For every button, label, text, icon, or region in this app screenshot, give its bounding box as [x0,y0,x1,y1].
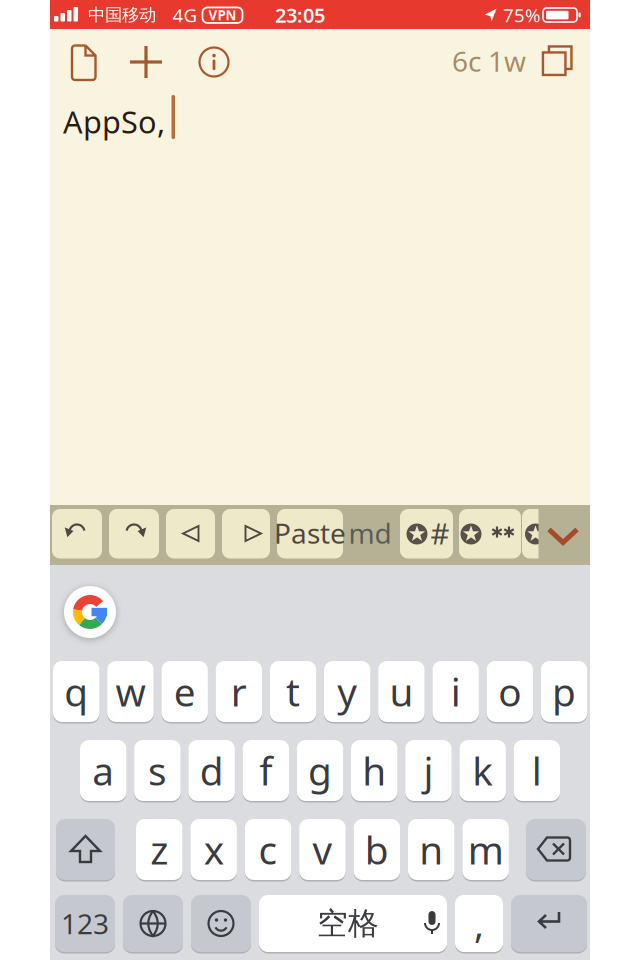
button[interactable]: Bold [459,509,521,558]
button[interactable]: Emoji [191,895,251,952]
button[interactable]: x [190,819,237,880]
button[interactable]: e [161,661,208,722]
staticText: 123 [61,905,109,942]
button[interactable]: Delete [526,819,586,880]
staticText: i [451,666,461,717]
staticText: h [362,745,386,796]
button[interactable]: l [514,740,560,801]
staticText: 空格 [317,905,379,942]
button[interactable]: Undo [52,509,102,558]
button[interactable]: b [354,819,400,880]
button[interactable]: Heading [400,509,453,558]
staticText: Paste [274,514,346,552]
staticText: t [286,666,300,717]
staticText: # [430,513,449,552]
staticText: x [204,824,224,875]
button[interactable]: p [541,661,587,722]
staticText: 6c 1w [452,42,526,80]
staticText: b [365,824,389,875]
staticText: d [200,745,224,796]
button[interactable]: n [408,819,454,880]
button[interactable]: o [487,661,533,722]
staticText: , [474,899,484,948]
button[interactable]: w [107,661,154,722]
button[interactable]: Google [64,586,116,638]
staticText: n [419,824,443,875]
staticText: o [498,666,521,717]
button[interactable]: Hide toolbar [541,509,589,559]
button[interactable]: s [134,740,181,801]
staticText: q [64,666,88,717]
button[interactable]: Move cursor left [166,509,215,558]
button[interactable]: c [245,819,291,880]
button[interactable]: u [378,661,425,722]
button[interactable]: Info [196,44,233,81]
button[interactable]: m [462,819,509,880]
staticText: v [312,824,332,875]
button[interactable]: Export [536,42,576,82]
staticText: e [174,666,196,717]
button[interactable]: New Document [64,40,104,84]
staticText: u [389,666,413,717]
staticText: AppSo, [63,101,165,142]
button[interactable]: z [136,819,182,880]
staticText: 中国移动 [88,4,156,26]
staticText: j [423,745,433,796]
staticText: l [532,745,542,796]
staticText: a [92,745,114,796]
button[interactable]: h [351,740,397,801]
button[interactable]: Paste [277,509,343,558]
button[interactable]: v [299,819,346,880]
staticText: r [231,666,247,717]
button[interactable]: a [80,740,126,801]
button[interactable]: y [324,661,370,722]
staticText: y [337,666,357,717]
staticText: 75% [503,3,541,27]
staticText: s [148,745,167,796]
button[interactable]: Next keyboard [123,895,183,952]
staticText: 23:05 [275,2,325,28]
staticText: g [308,745,332,796]
button[interactable]: r [216,661,262,722]
staticText: k [472,745,493,796]
staticText: w [115,666,145,717]
button[interactable]: Space [259,895,447,952]
button[interactable]: Move cursor right [222,509,270,558]
button[interactable]: f [243,740,289,801]
staticText: VPN [208,6,236,24]
button[interactable]: , [455,895,503,952]
button[interactable]: Shift [56,819,115,880]
staticText: 4G [172,3,197,27]
staticText: f [259,745,272,796]
button[interactable]: Add [126,42,166,82]
staticText: z [150,824,168,875]
staticText: c [259,824,278,875]
button[interactable]: q [53,661,99,722]
button[interactable]: i [432,661,479,722]
staticText: p [552,666,576,717]
button[interactable]: 123 [55,895,115,952]
button[interactable]: k [459,740,506,801]
button[interactable]: Markdown [346,509,394,558]
button[interactable]: j [405,740,452,801]
button[interactable]: Return [511,895,587,952]
staticText: md [348,514,391,552]
staticText: m [468,824,504,875]
button[interactable]: d [188,740,235,801]
button[interactable]: Redo [109,509,159,558]
button[interactable]: t [270,661,316,722]
button[interactable]: g [297,740,343,801]
